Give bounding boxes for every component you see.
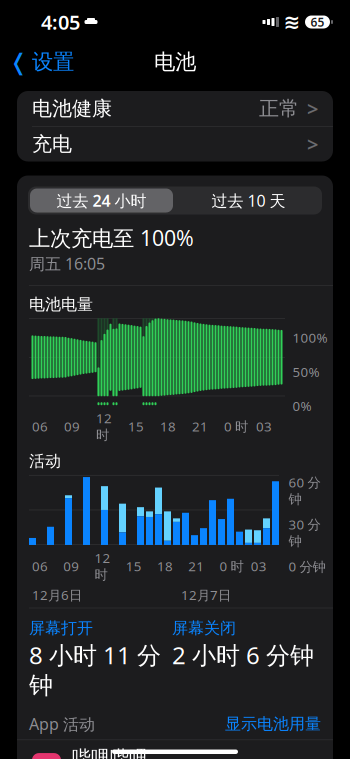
button[interactable]: 充电 — [17, 126, 333, 161]
staticText: 0 时 — [219, 557, 243, 575]
staticText: 电池健康 — [32, 96, 112, 121]
staticText: 21 — [188, 557, 204, 575]
staticText: 12 时 — [94, 549, 110, 583]
staticText: ❬ — [9, 49, 28, 75]
staticText: 15 — [126, 557, 142, 575]
staticText: 09 — [64, 417, 80, 435]
staticText: 0 分钟 — [288, 558, 325, 575]
staticText: 显示电池用量 — [225, 714, 321, 734]
staticText: 充电 — [32, 132, 72, 156]
button[interactable]: 电池健康 — [17, 91, 333, 126]
staticText: 哔哩哔哩 — [72, 746, 148, 759]
staticText: 0% — [292, 397, 311, 415]
staticText: 12月7日 — [181, 586, 231, 604]
staticText: 上次充电至 100% — [29, 223, 194, 252]
staticText: 21 — [192, 417, 208, 435]
button[interactable]: 显示电池用量 — [225, 714, 321, 734]
staticText: > — [307, 95, 318, 122]
staticText: 8 小时 11 分钟 — [29, 639, 161, 700]
staticText: 12月6日 — [32, 586, 82, 604]
staticText: 屏幕打开 — [29, 618, 93, 638]
staticText: 4:05 — [41, 9, 80, 35]
button[interactable]: 哔哩哔哩 — [17, 740, 333, 759]
staticText: 18 — [160, 417, 176, 435]
staticText: 18 — [157, 557, 173, 575]
staticText: ≋ — [283, 11, 300, 33]
staticText: 正常 — [259, 96, 299, 121]
button[interactable]: 过去 10 天 — [175, 186, 322, 214]
button[interactable]: ❬ — [0, 43, 74, 81]
staticText: 过去 24 小时 — [56, 190, 146, 211]
staticText: 设置 — [32, 49, 74, 75]
staticText: 15 — [128, 417, 144, 435]
staticText: 电池电量 — [29, 295, 93, 314]
staticText: 12 时 — [96, 409, 112, 443]
staticText: 周五 16:05 — [29, 253, 105, 274]
staticText: 活动 — [29, 451, 61, 471]
staticText: 过去 10 天 — [211, 190, 285, 211]
staticText: 06 — [32, 557, 48, 575]
staticText: 60 分钟 — [288, 473, 320, 507]
staticText: App 活动 — [29, 713, 95, 735]
staticText: > — [307, 131, 318, 157]
staticText: 03 — [251, 557, 267, 575]
staticText: 50% — [292, 363, 319, 381]
staticText: 06 — [32, 417, 48, 435]
button[interactable]: 过去 24 小时 — [28, 186, 175, 214]
staticText: 2 小时 6 分钟 — [172, 639, 314, 671]
staticText: 屏幕关闭 — [172, 618, 236, 638]
staticText: 30 分钟 — [288, 515, 320, 550]
staticText: 65 — [310, 14, 324, 30]
staticText: 0 时 — [224, 417, 248, 435]
staticText: 03 — [256, 417, 272, 435]
staticText: 09 — [63, 557, 79, 575]
staticText: 电池 — [154, 49, 196, 75]
staticText: 100% — [292, 329, 327, 346]
